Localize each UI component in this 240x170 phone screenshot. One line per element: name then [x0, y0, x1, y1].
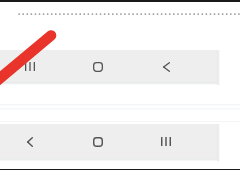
button[interactable]: Recents — [2, 50, 58, 83]
button[interactable]: Back — [2, 124, 58, 159]
button[interactable]: Home — [70, 124, 126, 159]
button[interactable]: Back — [138, 50, 194, 83]
button[interactable]: Home — [70, 50, 126, 83]
button[interactable]: Recents — [138, 124, 194, 159]
